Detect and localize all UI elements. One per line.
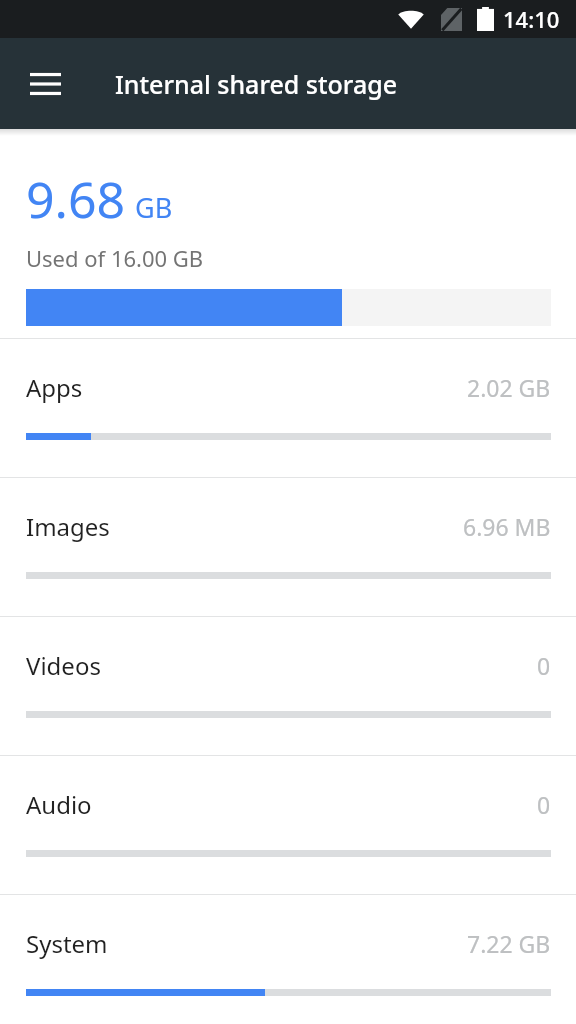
staticText: 9.68 — [26, 165, 126, 233]
staticText: Images — [26, 510, 110, 543]
staticText: Internal shared storage — [115, 67, 398, 101]
staticText: 14:10 — [503, 4, 560, 34]
staticText: 2.02 GB — [467, 372, 551, 403]
button[interactable]: Audio — [0, 756, 576, 894]
button[interactable]: Apps — [0, 339, 576, 477]
staticText: Used of 16.00 GB — [26, 243, 204, 273]
button[interactable]: System — [0, 895, 576, 1024]
staticText: GB — [135, 189, 173, 226]
button[interactable]: Images — [0, 478, 576, 616]
staticText: 7.22 GB — [467, 928, 551, 959]
staticText: Videos — [26, 649, 101, 682]
staticText: Audio — [26, 788, 92, 821]
staticText: 0 — [537, 789, 551, 820]
staticText: Apps — [26, 371, 83, 404]
button[interactable]: Videos — [0, 617, 576, 755]
staticText: System — [26, 927, 108, 960]
button[interactable]: Open navigation drawer — [14, 53, 76, 115]
staticText: 0 — [537, 650, 551, 681]
staticText: 6.96 MB — [463, 511, 551, 542]
